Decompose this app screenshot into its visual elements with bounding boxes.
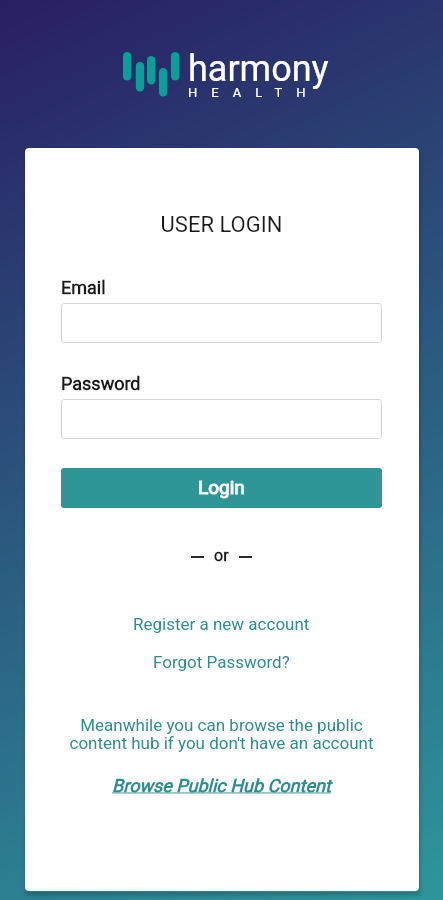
staticText: harmony [188,48,329,90]
staticText: Meanwhile you can browse the public cont… [61,715,382,753]
button[interactable]: Login [61,468,382,508]
button[interactable]: Forgot Password? [61,652,382,672]
staticText: Register a new account [133,614,310,634]
staticText: USER LOGIN [61,212,382,238]
button[interactable] [61,399,382,439]
staticText: Browse Public Hub Content [112,775,331,796]
staticText: Password [61,373,141,394]
button[interactable]: Register a new account [61,614,382,634]
staticText: HEALTH [188,85,320,100]
staticText: Login [198,476,245,498]
staticText: Forgot Password? [153,652,290,672]
staticText: Email [61,277,106,298]
staticText: or [214,546,229,564]
button[interactable]: Browse Public Hub Content [61,775,382,796]
button[interactable] [61,303,382,343]
